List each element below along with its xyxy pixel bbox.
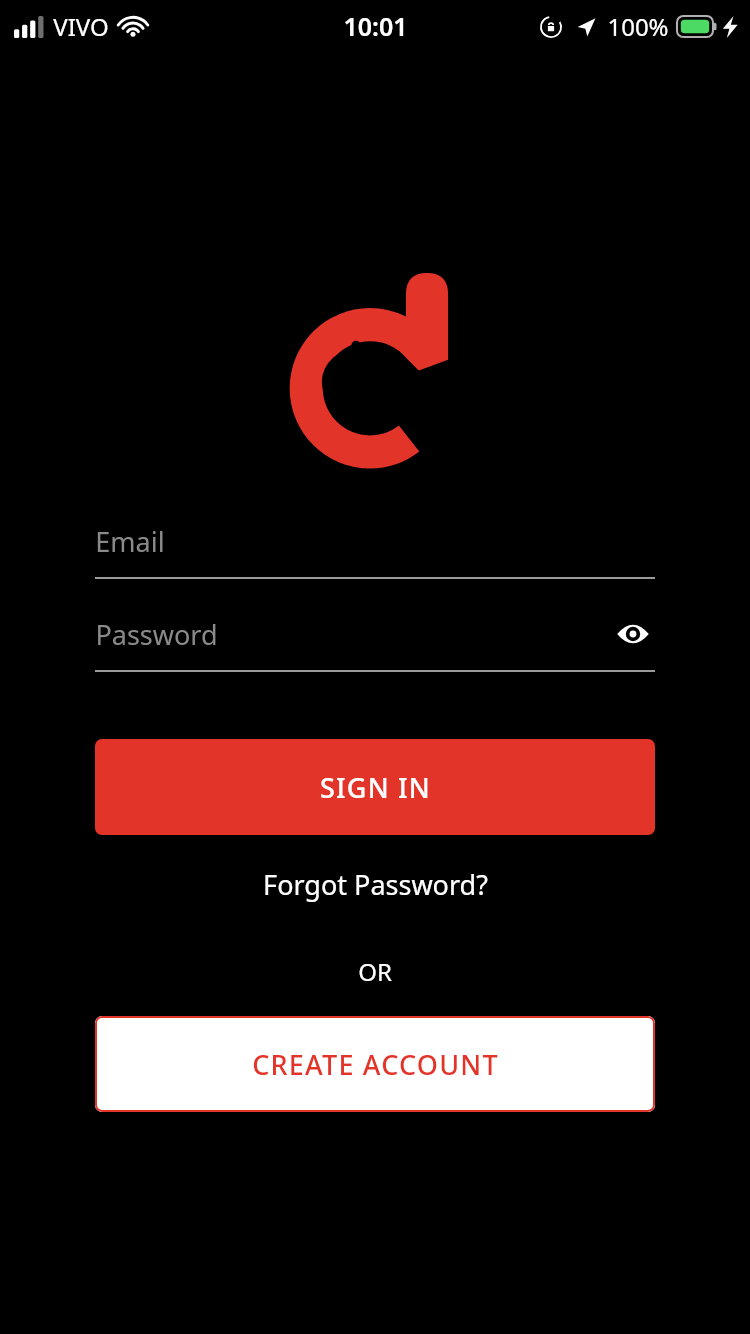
button[interactable]: Email [95, 518, 655, 579]
staticText: Forgot Password? [263, 866, 488, 903]
staticText: VIVO [53, 10, 109, 43]
staticText: SIGN IN [320, 769, 431, 806]
staticText: 100% [607, 10, 669, 43]
staticText: 10:01 [343, 9, 408, 43]
button[interactable]: Show password [611, 612, 655, 656]
staticText: Email [95, 523, 165, 560]
staticText: Password [95, 616, 218, 653]
button[interactable]: Forgot Password? [239, 858, 512, 911]
button[interactable]: CREATE ACCOUNT [95, 1016, 655, 1112]
button[interactable]: SIGN IN [95, 739, 655, 835]
staticText: CREATE ACCOUNT [252, 1046, 499, 1083]
staticText: OR [358, 955, 392, 988]
button[interactable]: Password [95, 611, 655, 672]
